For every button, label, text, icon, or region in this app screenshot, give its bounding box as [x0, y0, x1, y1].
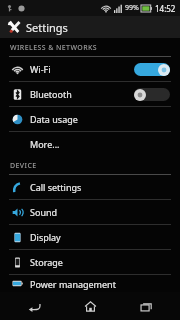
- staticText: Data usage: [30, 113, 78, 125]
- staticText: Power management: [30, 278, 116, 290]
- staticText: 14:52: [155, 3, 176, 14]
- staticText: Storage: [30, 256, 63, 268]
- button[interactable]: Data usage: [0, 107, 180, 131]
- staticText: WIRELESS & NETWORKS: [10, 43, 98, 53]
- button[interactable]: Toggle off: [134, 88, 170, 101]
- staticText: Wi-Fi: [30, 63, 51, 75]
- button[interactable]: Power management: [0, 275, 180, 292]
- staticText: DEVICE: [10, 161, 37, 171]
- button[interactable]: Display: [0, 225, 180, 249]
- staticText: More...: [30, 138, 60, 150]
- staticText: 99%: [125, 3, 139, 13]
- button[interactable]: Storage: [0, 250, 180, 274]
- button[interactable]: Call settings: [0, 175, 180, 199]
- staticText: Settings: [26, 20, 68, 35]
- button[interactable]: Back: [12, 292, 56, 320]
- button[interactable]: Recent apps: [124, 292, 168, 320]
- staticText: Bluetooth: [30, 88, 72, 100]
- staticText: Display: [30, 231, 61, 243]
- button[interactable]: Home: [68, 292, 112, 320]
- button[interactable]: Bluetooth: [0, 82, 180, 106]
- staticText: Call settings: [30, 181, 82, 193]
- button[interactable]: Toggle on: [134, 63, 170, 76]
- button[interactable]: Settings: [0, 16, 180, 38]
- button[interactable]: Sound: [0, 200, 180, 224]
- button[interactable]: More...: [0, 132, 180, 156]
- staticText: Sound: [30, 206, 58, 218]
- button[interactable]: Wi-Fi: [0, 57, 180, 81]
